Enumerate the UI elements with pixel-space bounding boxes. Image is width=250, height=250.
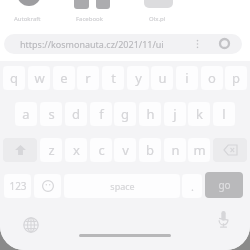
staticText: c — [98, 141, 105, 159]
staticText: t — [111, 69, 116, 87]
staticText: b — [146, 141, 154, 159]
staticText: . — [191, 179, 194, 194]
button[interactable]: h — [139, 102, 161, 126]
staticText: k — [196, 105, 203, 123]
button[interactable]: o — [201, 66, 223, 90]
staticText: j — [173, 105, 177, 123]
button[interactable]: w — [28, 66, 50, 90]
button[interactable]: e — [53, 66, 75, 90]
button[interactable]: c — [90, 138, 112, 162]
button[interactable]: j — [164, 102, 186, 126]
button[interactable]: v — [114, 138, 136, 162]
button[interactable]: Change keyboard language — [22, 216, 40, 234]
staticText: 123 — [9, 179, 27, 193]
staticText: q — [10, 69, 18, 87]
staticText: y — [135, 69, 142, 87]
button[interactable]: t — [102, 66, 124, 90]
button[interactable]: q — [3, 66, 25, 90]
button[interactable]: d — [65, 102, 87, 126]
button[interactable]: Stop loading — [217, 36, 232, 51]
staticText: Autokraft — [14, 15, 41, 23]
button[interactable]: u — [151, 66, 173, 90]
button[interactable]: Autokraft shortcut — [17, 0, 41, 6]
button[interactable]: Voice input — [215, 209, 232, 230]
staticText: e — [60, 69, 68, 87]
staticText: f — [99, 105, 104, 123]
button[interactable]: s — [40, 102, 62, 126]
button[interactable]: Shift — [3, 138, 37, 162]
staticText: o — [208, 69, 216, 87]
button[interactable]: x — [65, 138, 87, 162]
staticText: x — [73, 141, 80, 159]
staticText: g — [121, 105, 129, 123]
button[interactable]: Olx.pl — [125, 14, 189, 24]
button[interactable]: y — [127, 66, 149, 90]
button[interactable]: m — [188, 138, 210, 162]
staticText: i — [185, 69, 189, 87]
staticText: go — [218, 178, 231, 192]
button[interactable]: space — [64, 174, 180, 198]
button[interactable]: k — [188, 102, 210, 126]
staticText: h — [146, 105, 155, 123]
staticText: n — [171, 141, 180, 159]
button[interactable]: go — [205, 172, 243, 198]
button[interactable]: https://kosmonauta.cz/2021/11/ui — [4, 34, 242, 54]
staticText: w — [34, 69, 45, 87]
staticText: Facebook — [76, 15, 103, 23]
button[interactable]: l — [213, 102, 235, 126]
staticText: v — [122, 141, 129, 159]
staticText: z — [48, 141, 55, 159]
button[interactable]: More options — [193, 38, 202, 50]
button[interactable]: Facebook shortcut — [96, 0, 110, 9]
button[interactable]: Facebook — [57, 14, 121, 24]
button[interactable]: r — [77, 66, 99, 90]
staticText: s — [48, 105, 55, 123]
button[interactable]: Facebook shortcut — [74, 0, 89, 9]
staticText: u — [158, 69, 167, 87]
staticText: d — [72, 105, 80, 123]
staticText: space — [110, 180, 135, 192]
button[interactable]: 123 — [4, 174, 31, 198]
button[interactable]: b — [139, 138, 161, 162]
staticText: https://kosmonauta.cz/2021/11/ui — [20, 38, 164, 50]
staticText: l — [222, 105, 226, 123]
staticText: Olx.pl — [149, 15, 166, 23]
button[interactable]: Autokraft — [0, 14, 59, 24]
button[interactable]: a — [15, 102, 37, 126]
staticText: m — [193, 141, 206, 159]
staticText: r — [85, 69, 91, 87]
button[interactable]: p — [225, 66, 247, 90]
staticText: a — [22, 105, 30, 123]
button[interactable]: z — [40, 138, 62, 162]
button[interactable]: i — [176, 66, 198, 90]
button[interactable]: Emoji — [34, 174, 61, 198]
button[interactable]: n — [164, 138, 186, 162]
button[interactable]: f — [90, 102, 112, 126]
staticText: p — [232, 69, 240, 87]
button[interactable]: Olx.pl shortcut — [144, 0, 173, 8]
button[interactable]: Backspace — [213, 138, 247, 162]
button[interactable]: g — [114, 102, 136, 126]
